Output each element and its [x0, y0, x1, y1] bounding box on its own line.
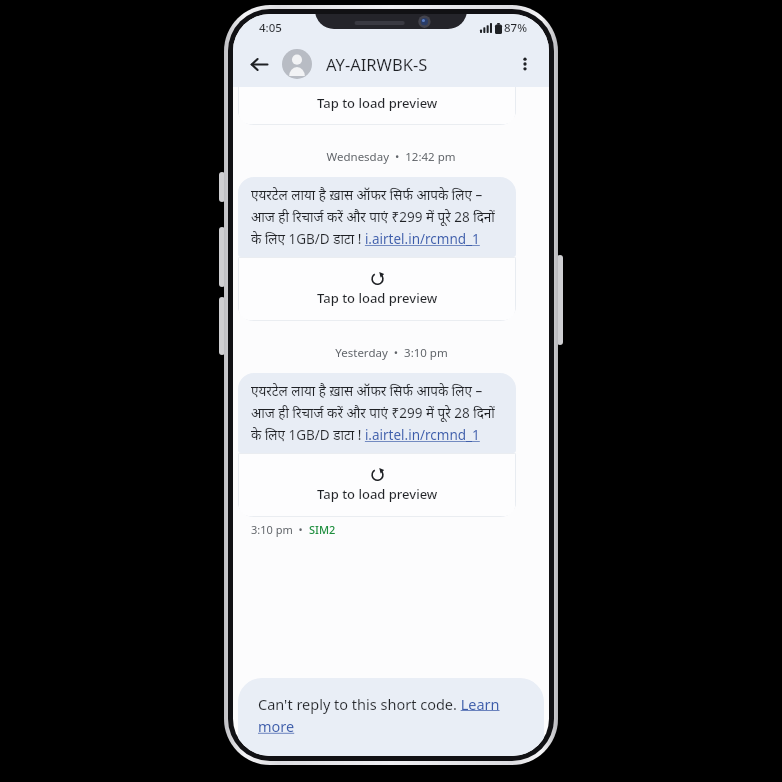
button[interactable]: एयरटेल लाया है ख़ास ऑफर सिर्फ आपके लिए –…: [238, 177, 516, 257]
button[interactable]: Can't reply to this short code. Learn mo…: [238, 678, 544, 756]
button[interactable]: More options: [506, 45, 544, 83]
staticText: AY-AIRWBK-S: [326, 53, 428, 75]
button[interactable]: Tap to load preview: [238, 87, 516, 125]
staticText: Tap to load preview: [317, 289, 438, 307]
staticText: Tap to load preview: [317, 485, 438, 503]
staticText: SIM2: [309, 522, 336, 537]
staticText: Can't reply to this short code. Learn mo…: [258, 694, 526, 736]
button[interactable]: AY-AIRWBK-S: [282, 41, 506, 87]
button[interactable]: एयरटेल लाया है ख़ास ऑफर सिर्फ आपके लिए –…: [238, 373, 516, 453]
staticText: Yesterday • 3:10 pm: [335, 345, 448, 361]
staticText: Tap to load preview: [317, 94, 438, 112]
staticText: Wednesday • 12:42 pm: [326, 149, 456, 165]
staticText: 3:10 pm •: [251, 522, 309, 537]
staticText: 87%: [504, 20, 527, 36]
button[interactable]: Tap to load preview: [238, 453, 516, 517]
button[interactable]: Tap to load preview: [238, 257, 516, 321]
staticText: एयरटेल लाया है ख़ास ऑफर सिर्फ आपके लिए –…: [251, 186, 505, 248]
staticText: एयरटेल लाया है ख़ास ऑफर सिर्फ आपके लिए –…: [251, 382, 505, 444]
button[interactable]: Back: [239, 44, 279, 84]
staticText: 4:05: [259, 20, 282, 36]
